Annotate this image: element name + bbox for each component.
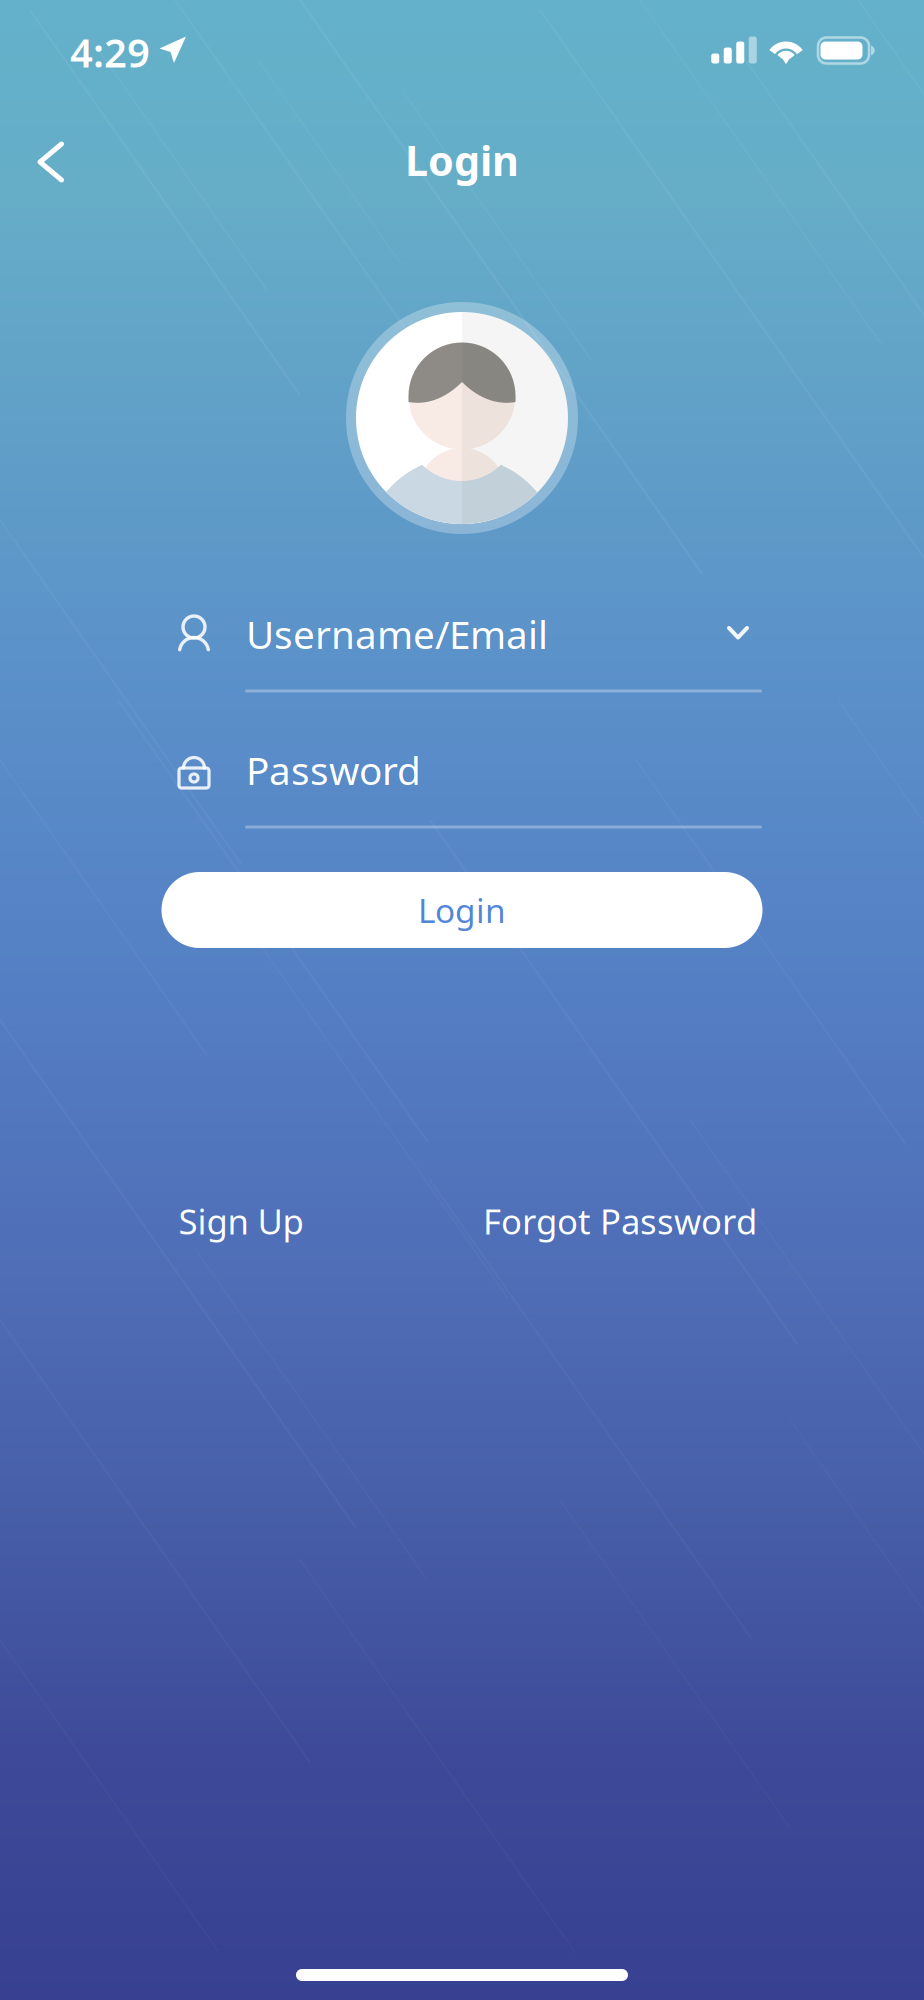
button[interactable]: Show suggestions [702,597,774,669]
staticText: Forgot Password [483,1198,757,1244]
button[interactable]: Forgot Password [430,1183,810,1259]
staticText: Password [246,744,421,796]
staticText: Sign Up [178,1198,303,1244]
button[interactable]: Login [161,872,762,948]
staticText: Login [405,133,519,187]
staticText: Login [418,888,506,932]
staticText: Username/Email [246,608,548,660]
button[interactable]: Back [5,116,97,208]
button[interactable]: Sign Up [121,1183,361,1259]
staticText: 4:29 [70,25,150,78]
